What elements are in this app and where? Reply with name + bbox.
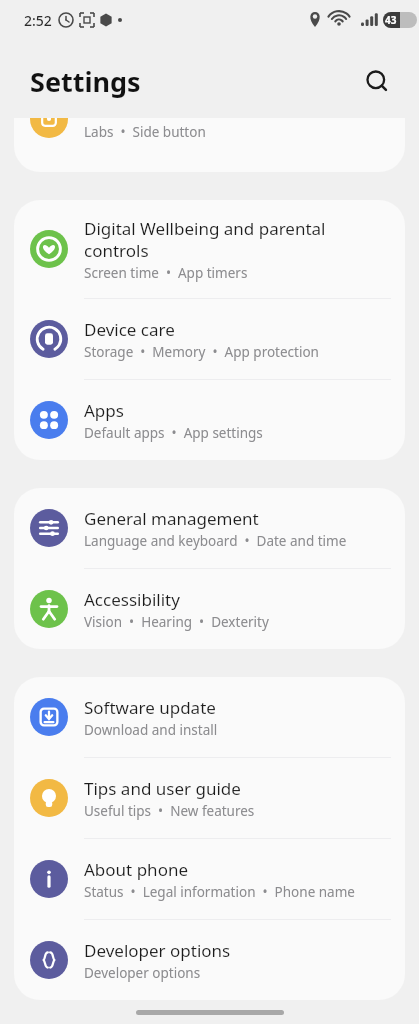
staticText: 2:52	[24, 11, 52, 30]
staticText: Default apps • App settings	[84, 424, 263, 442]
staticText: Digital Wellbeing and parental controls	[84, 217, 389, 262]
staticText: Device care	[84, 318, 175, 341]
staticText: Developer options	[84, 939, 231, 962]
staticText: Storage • Memory • App protection	[84, 343, 319, 361]
button[interactable]: Search	[357, 61, 397, 101]
staticText: Language and keyboard • Date and time	[84, 532, 347, 550]
button[interactable]: Apps	[14, 380, 405, 460]
button[interactable]: Accessibility	[14, 569, 405, 649]
button[interactable]: Tips and user guide	[14, 758, 405, 838]
button[interactable]: General management	[14, 488, 405, 568]
button[interactable]: Advanced features	[14, 118, 405, 172]
staticText: 43	[385, 13, 397, 27]
staticText: Screen time • App timers	[84, 264, 248, 282]
button[interactable]: About phone	[14, 839, 405, 919]
button[interactable]: Software update	[14, 677, 405, 757]
staticText: Tips and user guide	[84, 777, 241, 800]
staticText: Accessibility	[84, 588, 180, 611]
button[interactable]: Digital Wellbeing and parental controls	[14, 200, 405, 298]
staticText: Settings	[30, 63, 141, 100]
staticText: Labs • Side button	[84, 123, 206, 141]
staticText: Vision • Hearing • Dexterity	[84, 613, 269, 631]
staticText: About phone	[84, 858, 189, 881]
button[interactable]: Device care	[14, 299, 405, 379]
staticText: Software update	[84, 696, 216, 719]
staticText: Useful tips • New features	[84, 802, 255, 820]
staticText: Download and install	[84, 721, 218, 739]
staticText: Status • Legal information • Phone name	[84, 883, 355, 901]
button[interactable]: Developer options	[14, 920, 405, 1000]
staticText: Developer options	[84, 964, 201, 982]
staticText: General management	[84, 507, 259, 530]
staticText: Apps	[84, 399, 124, 422]
